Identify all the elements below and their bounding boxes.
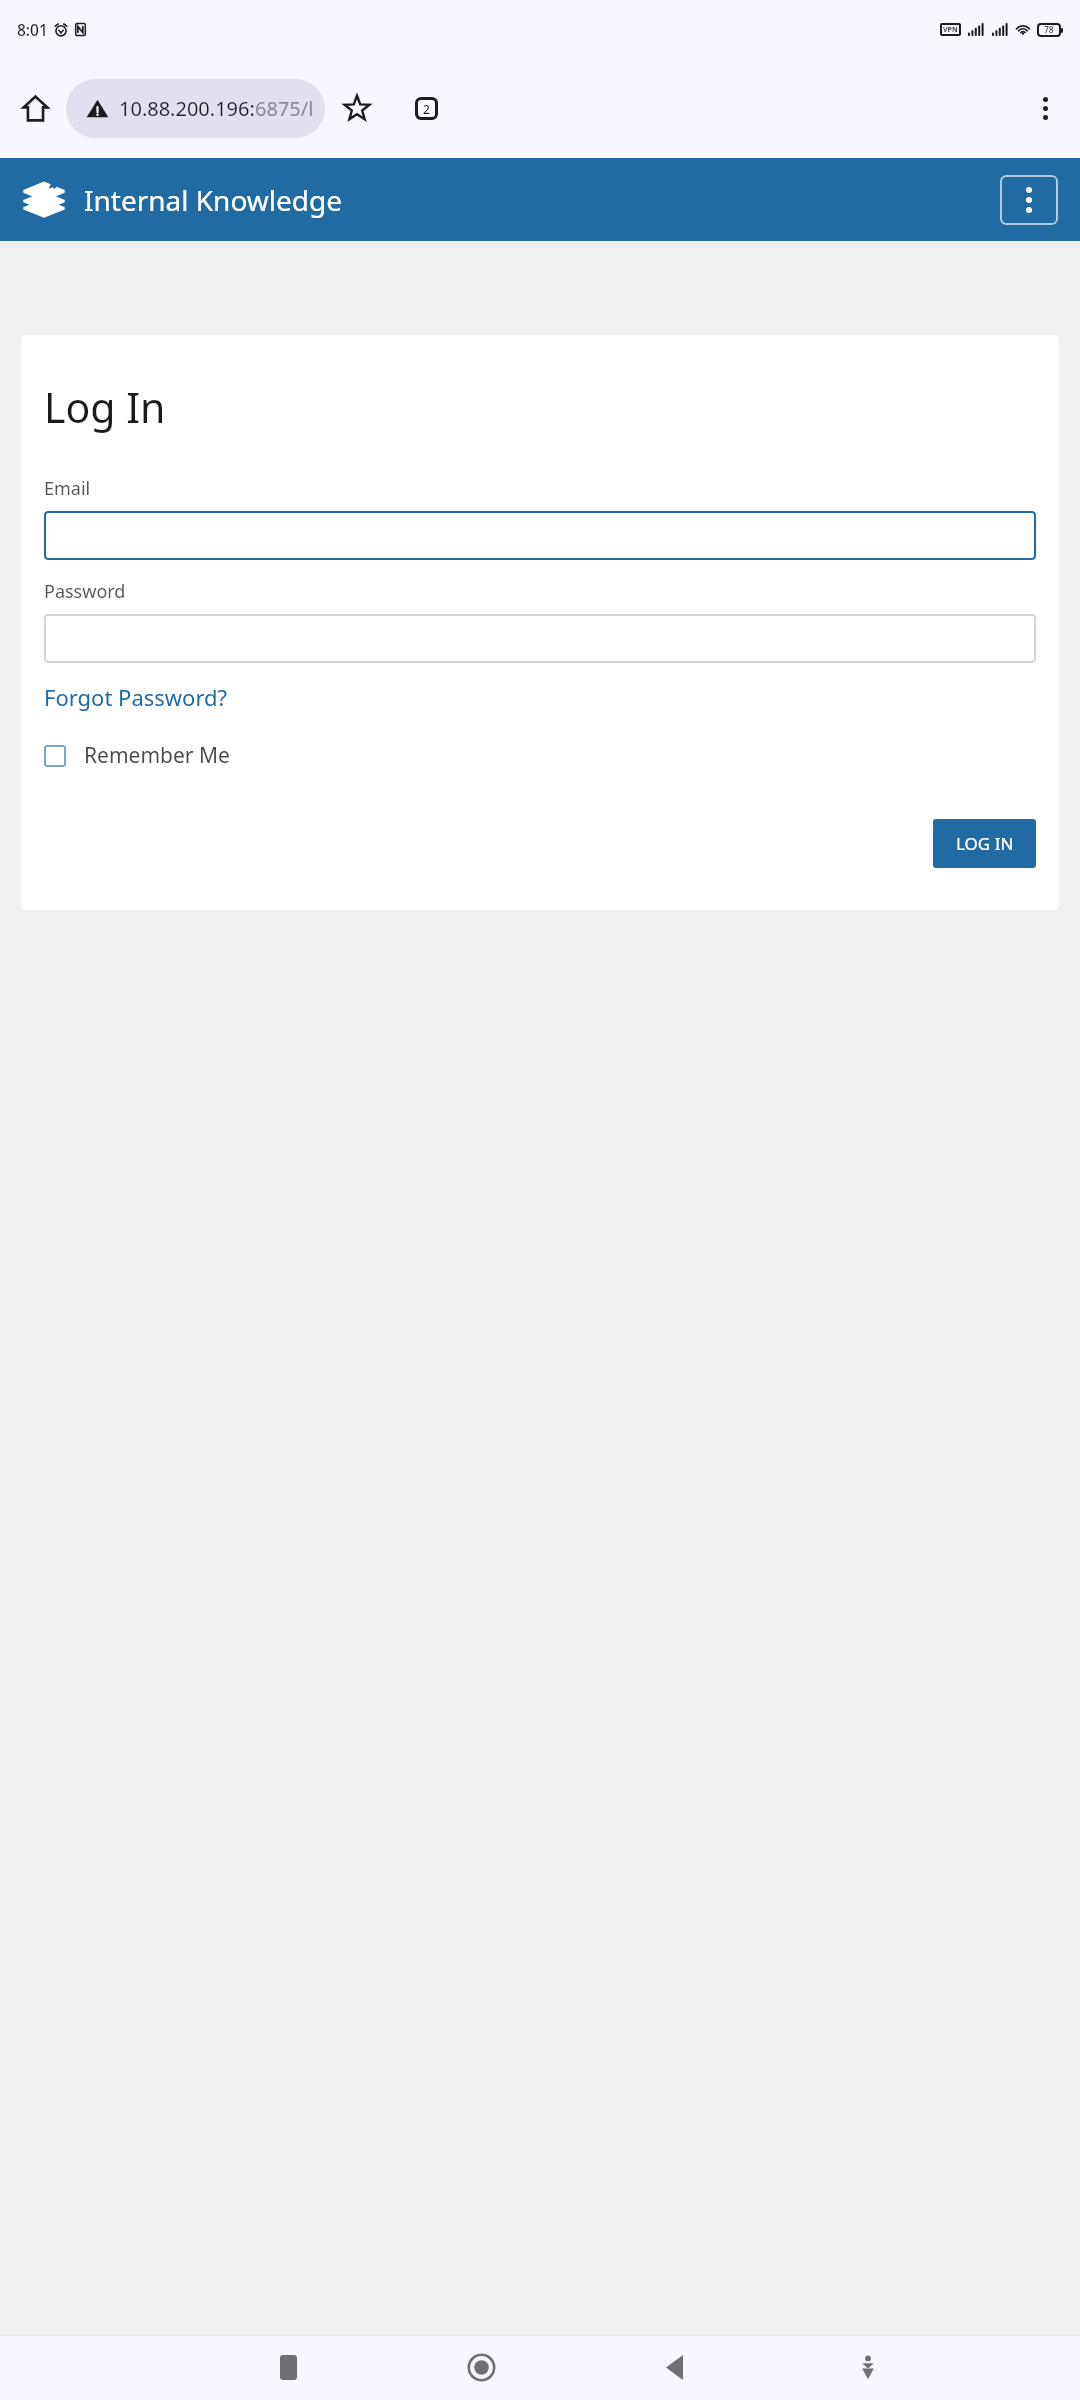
staticText: Log In (44, 379, 166, 435)
staticText: 78 (1044, 24, 1054, 36)
button[interactable]: Bookmark (331, 82, 383, 134)
button[interactable]: Hide keyboard (771, 2335, 964, 2400)
staticText: 2 (423, 101, 430, 117)
button[interactable]: More options (1019, 82, 1071, 134)
staticText: Forgot Password? (44, 682, 228, 712)
button[interactable]: Remember Me (44, 741, 230, 770)
staticText: Email (44, 476, 91, 501)
button[interactable]: Forgot Password? (44, 682, 228, 712)
button[interactable]: Back (578, 2335, 771, 2400)
button[interactable] (44, 511, 1036, 560)
staticText: 8:01 (17, 19, 48, 40)
button[interactable] (44, 614, 1036, 663)
button[interactable]: Recents (192, 2335, 385, 2400)
staticText: Internal Knowledge (84, 181, 343, 219)
staticText: 6875/l (255, 95, 314, 122)
staticText: VPN (943, 25, 958, 35)
staticText: LOG IN (956, 832, 1014, 855)
staticText: Password (44, 579, 126, 604)
button[interactable]: LOG IN (933, 819, 1036, 868)
staticText: 10.88.200.196: (119, 95, 255, 122)
button[interactable]: Home (385, 2335, 578, 2400)
button[interactable]: Home (9, 82, 61, 134)
button[interactable]: Tabs (400, 82, 452, 134)
button[interactable]: 10.88.200.196: (66, 79, 325, 138)
button[interactable]: Menu (1000, 175, 1058, 225)
staticText: Remember Me (84, 741, 230, 770)
